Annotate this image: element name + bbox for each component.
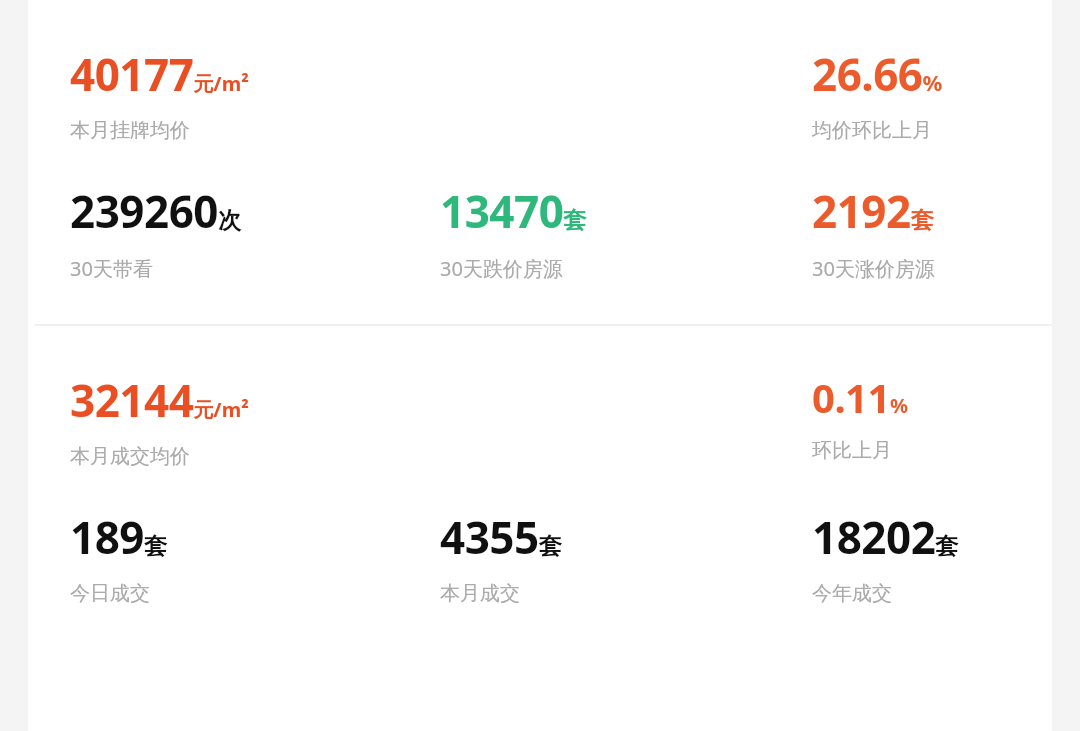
staticText: 30天带看 [70, 255, 153, 282]
button[interactable]: 4355套 [440, 507, 562, 606]
staticText: 今日成交 [70, 581, 150, 606]
button[interactable]: 32144元/m² [70, 370, 249, 469]
button[interactable]: 40177元/m² [70, 44, 249, 143]
staticText: 18202套 [812, 507, 959, 567]
staticText: 4355套 [440, 507, 562, 567]
staticText: 30天涨价房源 [812, 255, 935, 282]
staticText: 239260次 [70, 181, 242, 241]
button[interactable]: 18202套 [812, 507, 959, 606]
staticText: 32144元/m² [70, 370, 249, 430]
staticText: 26.66% [812, 44, 943, 104]
button[interactable]: 0.11% [812, 370, 908, 463]
button[interactable]: 239260次 [70, 181, 242, 282]
staticText: 本月成交均价 [70, 444, 190, 469]
staticText: 13470套 [440, 181, 587, 241]
staticText: 今年成交 [812, 581, 892, 606]
staticText: 2192套 [812, 181, 934, 241]
button[interactable]: 26.66% [812, 44, 943, 143]
button[interactable]: 189套 [70, 507, 168, 606]
staticText: 均价环比上月 [812, 118, 932, 143]
button[interactable]: 2192套 [812, 181, 935, 282]
staticText: 189套 [70, 507, 168, 567]
staticText: 环比上月 [812, 438, 892, 463]
button[interactable]: 13470套 [440, 181, 587, 282]
staticText: 本月成交 [440, 581, 520, 606]
staticText: 0.11% [812, 370, 908, 424]
staticText: 本月挂牌均价 [70, 118, 190, 143]
staticText: 30天跌价房源 [440, 255, 563, 282]
staticText: 40177元/m² [70, 44, 249, 104]
